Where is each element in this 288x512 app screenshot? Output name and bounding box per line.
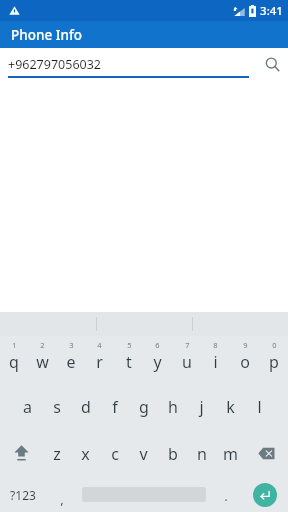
staticText: q bbox=[9, 351, 19, 373]
button[interactable]: 1 bbox=[0, 336, 28, 383]
button[interactable]: f bbox=[100, 383, 129, 430]
button[interactable]: b bbox=[158, 430, 187, 477]
staticText: 7 bbox=[185, 340, 190, 350]
button[interactable]: k bbox=[216, 383, 245, 430]
button[interactable]: Backspace bbox=[245, 430, 288, 477]
button[interactable]: 4 bbox=[85, 336, 114, 383]
button[interactable]: Enter bbox=[242, 477, 288, 512]
staticText: 5 bbox=[127, 340, 132, 350]
staticText: l bbox=[257, 396, 262, 418]
staticText: 4 bbox=[97, 340, 102, 350]
button[interactable]: l bbox=[245, 383, 274, 430]
staticText: i bbox=[213, 351, 218, 373]
button[interactable]: +962797056032 bbox=[8, 50, 249, 78]
button[interactable]: 5 bbox=[114, 336, 143, 383]
button[interactable]: h bbox=[158, 383, 187, 430]
button[interactable]: 0 bbox=[259, 336, 288, 383]
staticText: w bbox=[36, 351, 49, 373]
button[interactable]: 6 bbox=[143, 336, 172, 383]
button[interactable]: . bbox=[210, 477, 242, 512]
staticText: n bbox=[197, 443, 207, 465]
staticText: y bbox=[153, 351, 162, 373]
button[interactable]: v bbox=[129, 430, 158, 477]
staticText: m bbox=[223, 443, 238, 465]
button[interactable]: c bbox=[100, 430, 129, 477]
staticText: , bbox=[60, 490, 64, 508]
button[interactable]: d bbox=[71, 383, 100, 430]
staticText: 9 bbox=[243, 340, 248, 350]
button[interactable]: 8 bbox=[201, 336, 230, 383]
button[interactable]: , bbox=[46, 477, 78, 512]
staticText: . bbox=[224, 487, 228, 505]
staticText: s bbox=[53, 396, 61, 418]
staticText: Phone Info bbox=[11, 26, 82, 44]
staticText: e bbox=[66, 351, 76, 373]
staticText: d bbox=[81, 396, 91, 418]
button[interactable]: n bbox=[187, 430, 216, 477]
staticText: 6 bbox=[155, 340, 160, 350]
staticText: 8 bbox=[213, 340, 218, 350]
staticText: c bbox=[111, 443, 119, 465]
staticText: h bbox=[168, 396, 178, 418]
button[interactable]: 9 bbox=[230, 336, 259, 383]
staticText: g bbox=[139, 396, 149, 418]
button[interactable]: m bbox=[216, 430, 245, 477]
button[interactable]: a bbox=[13, 383, 42, 430]
staticText: 0 bbox=[272, 340, 277, 350]
staticText: +962797056032 bbox=[8, 56, 101, 73]
staticText: 3:41 bbox=[260, 3, 283, 19]
staticText: z bbox=[53, 443, 61, 465]
staticText: ?123 bbox=[10, 487, 36, 503]
staticText: 1 bbox=[12, 340, 17, 350]
staticText: b bbox=[168, 443, 178, 465]
button[interactable]: s bbox=[42, 383, 71, 430]
staticText: j bbox=[199, 396, 204, 418]
staticText: u bbox=[182, 351, 192, 373]
button[interactable]: 2 bbox=[28, 336, 56, 383]
button[interactable]: x bbox=[71, 430, 100, 477]
staticText: v bbox=[139, 443, 148, 465]
staticText: a bbox=[23, 396, 32, 418]
button[interactable]: Shift bbox=[0, 430, 42, 477]
staticText: 3 bbox=[69, 340, 74, 350]
button[interactable]: j bbox=[187, 383, 216, 430]
staticText: p bbox=[269, 351, 279, 373]
staticText: o bbox=[240, 351, 250, 373]
staticText: f bbox=[112, 396, 118, 418]
button[interactable]: 3 bbox=[56, 336, 85, 383]
staticText: 2 bbox=[40, 340, 45, 350]
button[interactable]: ?123 bbox=[0, 477, 46, 512]
staticText: k bbox=[226, 396, 235, 418]
button[interactable]: 7 bbox=[172, 336, 201, 383]
staticText: r bbox=[96, 351, 103, 373]
staticText: x bbox=[81, 443, 90, 465]
button[interactable]: z bbox=[42, 430, 71, 477]
button[interactable]: g bbox=[129, 383, 158, 430]
staticText: t bbox=[126, 351, 132, 373]
button[interactable]: Search bbox=[257, 49, 288, 80]
